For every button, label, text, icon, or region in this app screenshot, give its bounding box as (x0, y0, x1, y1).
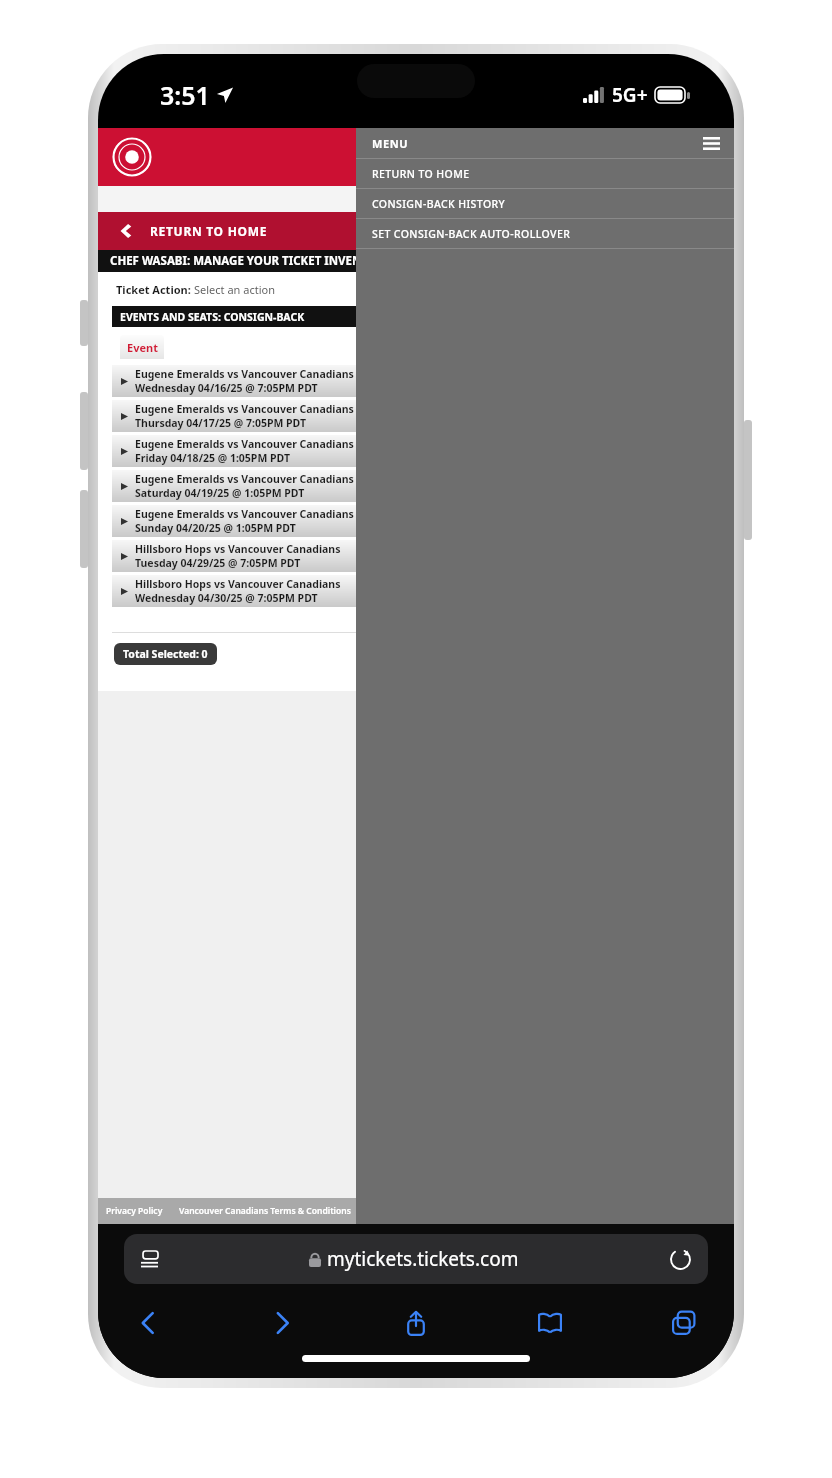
staticText: Thursday 04/17/25 @ 7:05PM PDT (135, 416, 307, 430)
button[interactable]: Bookmarks (526, 1299, 574, 1347)
button[interactable]: CONSIGN-BACK HISTORY (356, 189, 734, 218)
staticText: Sunday 04/20/25 @ 1:05PM PDT (135, 521, 296, 535)
button[interactable]: Eugene Emeralds vs Vancouver Canadians (112, 435, 720, 467)
staticText: Wednesday 04/16/25 @ 7:05PM PDT (135, 381, 318, 395)
staticText: Wednesday 04/30/25 @ 7:05PM PDT (135, 591, 318, 605)
staticText: Eugene Emeralds vs Vancouver Canadians (135, 367, 354, 381)
staticText: Eugene Emeralds vs Vancouver Canadians (135, 507, 354, 521)
staticText: Eugene Emeralds vs Vancouver Canadians (135, 402, 354, 416)
staticText: 5G+ (612, 82, 648, 108)
staticText: Eugene Emeralds vs Vancouver Canadians (135, 437, 354, 451)
button[interactable]: Eugene Emeralds vs Vancouver Canadians (112, 470, 720, 502)
button[interactable]: Close menu (694, 128, 728, 158)
staticText: Ticket Action: (116, 282, 194, 297)
staticText: Hillsboro Hops vs Vancouver Canadians (135, 577, 341, 591)
button[interactable]: Reload (664, 1243, 696, 1275)
staticText: RETURN TO HOME (150, 223, 268, 239)
staticText: Hillsboro Hops vs Vancouver Canadians (135, 542, 341, 556)
button[interactable]: Forward (258, 1299, 306, 1347)
staticText: Total Selected: 0 (123, 647, 208, 661)
button[interactable]: SET CONSIGN-BACK AUTO-ROLLOVER (356, 219, 734, 248)
button[interactable]: RETURN TO HOME (356, 159, 734, 188)
button[interactable]: Back (124, 1299, 172, 1347)
staticText: CONSIGN-BACK HISTORY (372, 197, 506, 211)
button[interactable]: Hillsboro Hops vs Vancouver Canadians (112, 540, 720, 572)
staticText: mytickets.tickets.com (327, 1246, 519, 1272)
staticText: Eugene Emeralds vs Vancouver Canadians (135, 472, 354, 486)
staticText: MENU (372, 136, 409, 151)
staticText: CHEF WASABI: MANAGE YOUR TICKET INVENTOR… (110, 253, 392, 269)
button[interactable]: Hillsboro Hops vs Vancouver Canadians (112, 575, 720, 607)
staticText: Tuesday 04/29/25 @ 7:05PM PDT (135, 556, 301, 570)
button[interactable]: Vancouver Canadians Terms & Conditions (179, 1205, 351, 1217)
staticText: 3:51 (160, 78, 210, 112)
staticText: Friday 04/18/25 @ 1:05PM PDT (135, 451, 290, 465)
staticText: RETURN TO HOME (372, 167, 470, 181)
button[interactable]: Page settings (124, 1234, 708, 1284)
staticText: Event (127, 340, 158, 355)
staticText: Select an action (194, 282, 275, 297)
button[interactable]: Page settings (134, 1244, 164, 1274)
button[interactable]: MENU (356, 128, 734, 158)
button[interactable]: Eugene Emeralds vs Vancouver Canadians (112, 365, 720, 397)
button[interactable]: Eugene Emeralds vs Vancouver Canadians (112, 505, 720, 537)
button[interactable]: Total Selected: 0 (123, 647, 208, 661)
button[interactable]: Share (392, 1299, 440, 1347)
staticText: SET CONSIGN-BACK AUTO-ROLLOVER (372, 227, 571, 241)
staticText: EVENTS AND SEATS: CONSIGN-BACK (120, 310, 305, 324)
button[interactable]: Eugene Emeralds vs Vancouver Canadians (112, 400, 720, 432)
button[interactable]: RETURN TO HOME (98, 212, 734, 250)
button[interactable]: Tabs (660, 1299, 708, 1347)
button[interactable]: Event (120, 335, 164, 359)
staticText: Saturday 04/19/25 @ 1:05PM PDT (135, 486, 305, 500)
button[interactable]: Privacy Policy (106, 1205, 163, 1217)
